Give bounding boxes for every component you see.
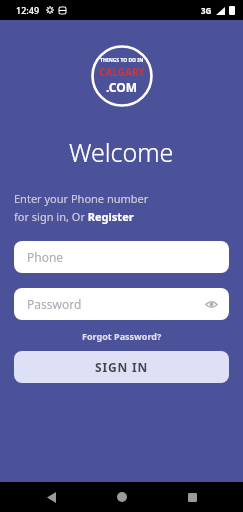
staticText: 3G <box>201 5 212 16</box>
staticText: Welcome <box>69 135 174 169</box>
button[interactable]: Back <box>31 482 71 512</box>
button[interactable]: Home <box>102 482 142 512</box>
button[interactable]: Recent apps <box>172 482 212 512</box>
button[interactable]: Show password <box>203 296 219 312</box>
button[interactable]: Phone <box>14 241 229 273</box>
staticText: Forgot Password? <box>82 330 162 342</box>
button[interactable]: Forgot Password? <box>0 330 243 342</box>
staticText: Enter your Phone number <box>14 191 149 206</box>
staticText: THINGS TO DO IN <box>100 57 144 64</box>
staticText: for sign in, Or Register <box>14 209 134 224</box>
button[interactable]: SIGN IN <box>14 351 229 383</box>
staticText: 12:49 <box>16 4 40 16</box>
staticText: .COM <box>106 79 138 95</box>
staticText: SIGN IN <box>95 359 148 375</box>
staticText: CALGARY <box>99 65 145 79</box>
staticText: Password <box>27 296 82 312</box>
button[interactable]: Password <box>14 288 229 320</box>
staticText: Phone <box>27 249 64 265</box>
